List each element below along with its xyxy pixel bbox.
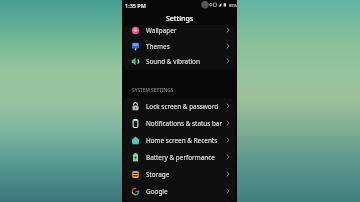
staticText: 1:35 PM — [125, 2, 146, 9]
button[interactable]: Wallpaper — [122, 22, 237, 38]
button[interactable]: Lock screen & password — [122, 98, 237, 114]
button[interactable]: Sound & vibration — [122, 53, 237, 69]
staticText: Lock screen & password — [146, 102, 219, 111]
button[interactable]: Themes — [122, 38, 237, 54]
staticText: Wallpaper — [146, 26, 177, 35]
staticText: Home screen & Recents — [146, 136, 218, 145]
button[interactable]: Notifications & status bar — [122, 115, 237, 131]
staticText: Sound & vibration — [146, 57, 200, 66]
button[interactable]: Storage — [122, 166, 237, 182]
staticText: Google — [146, 187, 168, 196]
staticText: Battery & performance — [146, 153, 215, 162]
staticText: Storage — [146, 170, 170, 179]
button[interactable]: Google — [122, 183, 237, 199]
staticText: SYSTEM SETTINGS — [132, 87, 174, 94]
staticText: Themes — [146, 42, 170, 51]
button[interactable]: Home screen & Recents — [122, 132, 237, 148]
staticText: 85% — [229, 3, 237, 8]
staticText: Settings — [166, 14, 194, 24]
button[interactable]: Battery & performance — [122, 149, 237, 165]
staticText: Notifications & status bar — [146, 119, 223, 128]
